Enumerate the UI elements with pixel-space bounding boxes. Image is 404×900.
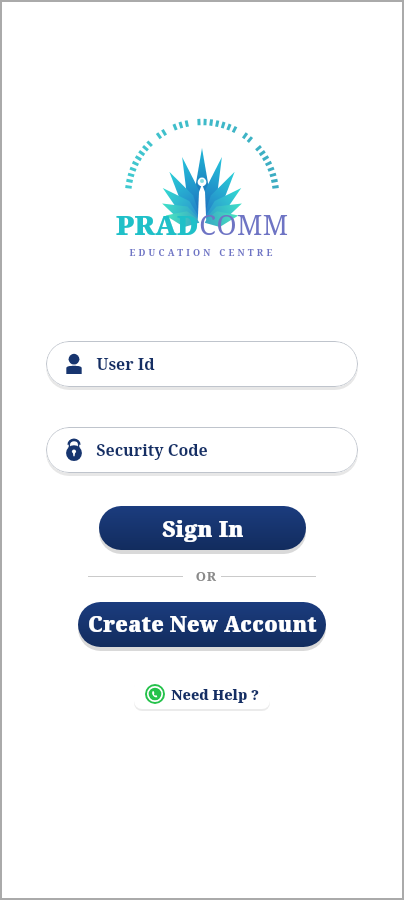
staticText: COMM	[199, 206, 289, 243]
staticText: Need Help ?	[171, 685, 259, 704]
button[interactable]: Security Code	[46, 427, 358, 473]
staticText: Security Code	[96, 439, 208, 461]
staticText: User Id	[96, 353, 155, 375]
button[interactable]: WhatsApp	[134, 679, 270, 709]
staticText: Sign In	[162, 513, 244, 543]
staticText: PRAD	[116, 206, 199, 243]
button[interactable]: Sign In	[99, 506, 306, 550]
button[interactable]: Create New Account	[78, 602, 326, 647]
button[interactable]: User Id	[46, 341, 358, 387]
staticText: EDUCATION CENTRE	[129, 246, 276, 258]
staticText: Create New Account	[88, 610, 317, 639]
staticText: OR	[183, 567, 221, 585]
other: WhatsApp	[145, 684, 165, 704]
